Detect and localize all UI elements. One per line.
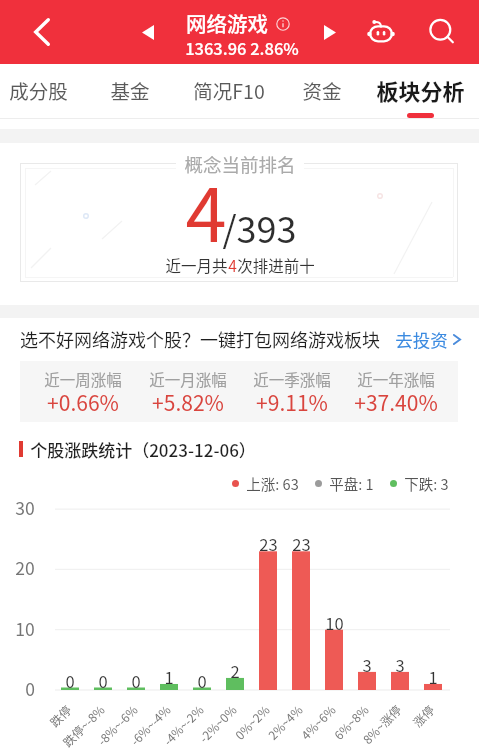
staticText: 上涨: 63: [246, 473, 299, 494]
staticText: 平盘: 1: [329, 473, 374, 494]
button[interactable]: Back: [14, 0, 70, 64]
button[interactable]: 选不好网络游戏个股？一键打包网络游戏板块: [0, 322, 479, 356]
staticText: 6%~8%: [329, 701, 372, 743]
staticText: 2%~4%: [263, 701, 306, 743]
staticText: 次排进前十: [237, 254, 315, 276]
button[interactable]: Next sector: [312, 0, 348, 64]
staticText: 30: [15, 495, 35, 520]
staticText: 近一年涨幅: [357, 368, 435, 390]
staticText: 网络游戏: [186, 8, 268, 38]
staticText: 去投资: [395, 327, 448, 352]
staticText: 近一月共: [165, 254, 228, 276]
staticText: 成分股: [9, 76, 68, 104]
staticText: 0: [98, 669, 108, 693]
button[interactable]: 成分股: [0, 64, 86, 118]
staticText: /393: [222, 201, 297, 253]
button[interactable]: 板块分析: [372, 64, 468, 118]
button[interactable]: Information: [274, 15, 291, 32]
staticText: 0: [65, 669, 75, 693]
staticText: 概念当前排名: [184, 151, 296, 178]
staticText: 跌停: [45, 701, 75, 730]
staticText: -4%~-2%: [159, 701, 207, 748]
staticText: 跌停~-8%: [58, 701, 108, 748]
staticText: 涨停: [408, 701, 438, 730]
staticText: -2%~0%: [195, 701, 240, 746]
staticText: 个股涨跌统计（2023-12-06）: [30, 437, 256, 462]
staticText: 0: [131, 669, 141, 693]
staticText: 近一月涨幅: [149, 368, 227, 390]
staticText: -6%~-4%: [126, 701, 174, 748]
staticText: 0: [25, 676, 35, 701]
staticText: 23: [292, 532, 311, 556]
staticText: +5.82%: [152, 387, 224, 417]
button[interactable]: Search: [418, 0, 466, 64]
staticText: 下跌: 3: [404, 473, 449, 494]
staticText: 0%~2%: [230, 701, 273, 743]
staticText: 基金: [110, 76, 150, 104]
staticText: 3: [362, 653, 372, 677]
staticText: 1363.96 2.86%: [185, 36, 299, 60]
button[interactable]: AI assistant: [357, 0, 405, 64]
staticText: 1: [164, 665, 174, 689]
staticText: 10: [15, 616, 35, 641]
staticText: 23: [259, 532, 278, 556]
staticText: 近一季涨幅: [253, 368, 331, 390]
staticText: 板块分析: [376, 74, 465, 106]
button[interactable]: 简况F10: [181, 64, 277, 118]
staticText: 2: [230, 659, 240, 683]
staticText: 0: [197, 669, 207, 693]
staticText: 4%~6%: [296, 701, 339, 743]
staticText: 20: [15, 555, 35, 580]
button[interactable]: Previous sector: [130, 0, 166, 64]
button[interactable]: 基金: [82, 64, 178, 118]
staticText: -8%~-6%: [93, 701, 141, 748]
staticText: 4: [185, 156, 227, 263]
staticText: 1: [428, 665, 438, 689]
staticText: 资金: [302, 76, 342, 104]
staticText: 近一周涨幅: [44, 368, 122, 390]
staticText: 8%~涨停: [358, 701, 405, 747]
staticText: +37.40%: [354, 387, 438, 417]
staticText: 10: [325, 611, 344, 635]
staticText: 选不好网络游戏个股？一键打包网络游戏板块: [20, 326, 380, 352]
staticText: 4: [228, 254, 237, 276]
button[interactable]: 资金: [274, 64, 370, 118]
staticText: +0.66%: [47, 387, 119, 417]
staticText: 简况F10: [193, 76, 265, 104]
staticText: +9.11%: [256, 387, 328, 417]
staticText: 3: [395, 653, 405, 677]
